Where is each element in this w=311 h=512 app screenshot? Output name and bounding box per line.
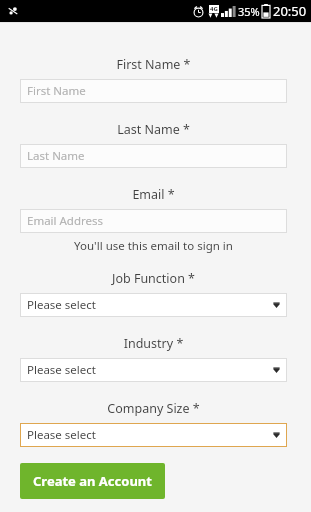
staticText: First Name	[27, 83, 86, 99]
staticText: Please select	[27, 427, 96, 443]
button[interactable]: Email Address	[20, 209, 287, 233]
staticText: 35%	[238, 4, 260, 19]
staticText: 4G	[210, 5, 218, 13]
staticText: Last Name *	[20, 121, 287, 138]
staticText: Email *	[20, 186, 287, 203]
button[interactable]: First Name	[20, 79, 287, 103]
staticText: Create an Account	[33, 472, 152, 490]
button[interactable]: Please select	[20, 423, 287, 447]
staticText: Industry *	[20, 335, 287, 352]
staticText: 20:50	[273, 2, 307, 20]
staticText: Job Function *	[20, 270, 287, 287]
staticText: First Name *	[20, 56, 287, 73]
button[interactable]: Please select	[20, 293, 287, 317]
button[interactable]: Create an Account	[20, 463, 165, 499]
staticText: You'll use this email to sign in	[20, 238, 287, 254]
staticText: Last Name	[27, 148, 85, 164]
other: App notification	[7, 5, 19, 17]
staticText: Company Size *	[20, 400, 287, 417]
staticText: Please select	[27, 362, 96, 378]
button[interactable]: Last Name	[20, 144, 287, 168]
staticText: Email Address	[27, 213, 104, 229]
staticText: Please select	[27, 297, 96, 313]
button[interactable]: Please select	[20, 358, 287, 382]
